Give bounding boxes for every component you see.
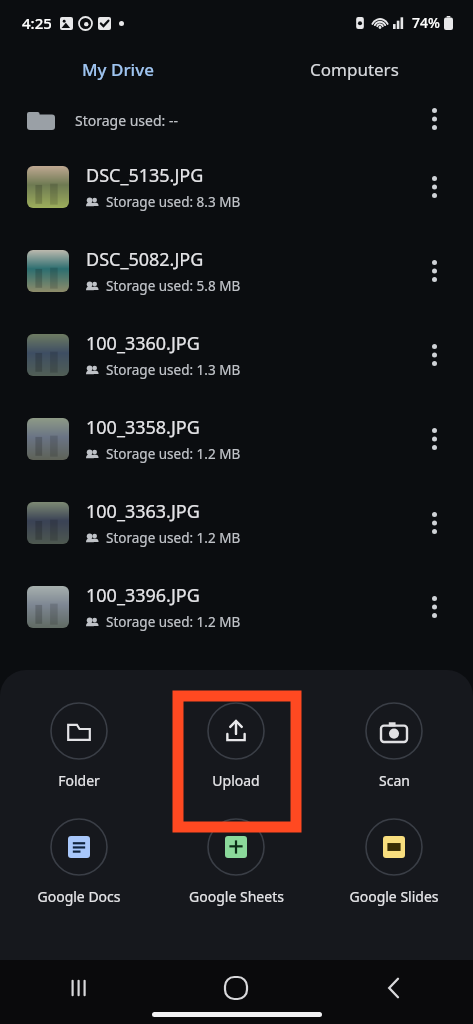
staticText: Google Sheets (189, 887, 284, 906)
button[interactable]: Google Sheets (157, 812, 315, 912)
staticText: 100_3358.JPG (86, 415, 200, 440)
button[interactable]: More options (417, 499, 451, 547)
button[interactable]: Back (315, 960, 473, 1016)
staticText: Google Slides (349, 887, 439, 906)
staticText: Storage used: 1.3 MB (106, 361, 241, 379)
button[interactable]: My Drive (0, 45, 236, 93)
staticText: Storage used: 5.8 MB (106, 277, 241, 295)
button[interactable]: Folder (0, 696, 157, 796)
button[interactable]: Home (157, 960, 315, 1016)
button[interactable]: More options (417, 331, 451, 379)
staticText: DSC_5082.JPG (86, 247, 204, 272)
button[interactable]: Computers (236, 45, 473, 93)
staticText: Storage used: 1.2 MB (106, 529, 241, 547)
button[interactable]: Google Slides (315, 812, 473, 912)
button[interactable]: Google Docs (0, 812, 157, 912)
button[interactable]: Scan (315, 696, 473, 796)
button[interactable]: Upload (157, 696, 315, 796)
button[interactable]: More options (417, 583, 451, 631)
button[interactable]: More options (417, 415, 451, 463)
staticText: 74% (412, 13, 440, 32)
button[interactable]: DSC_5082.JPG (0, 229, 473, 313)
button[interactable]: More options (417, 95, 451, 143)
staticText: Storage used: 1.2 MB (106, 445, 241, 463)
button[interactable]: More options (417, 247, 451, 295)
button[interactable]: More options (417, 163, 451, 211)
staticText: Storage used: 8.3 MB (106, 193, 241, 211)
button[interactable]: 100_3360.JPG (0, 313, 473, 397)
button[interactable]: Storage used: -- (0, 93, 473, 145)
staticText: Upload (212, 771, 260, 790)
staticText: Storage used: -- (75, 111, 178, 130)
staticText: 100_3396.JPG (86, 583, 200, 608)
button[interactable]: DSC_5135.JPG (0, 145, 473, 229)
staticText: DSC_5135.JPG (86, 163, 204, 188)
staticText: Scan (379, 771, 410, 790)
staticText: Folder (58, 771, 100, 790)
staticText: 100_3360.JPG (86, 331, 200, 356)
staticText: 4:25 (22, 13, 52, 33)
staticText: Computers (310, 58, 399, 81)
staticText: My Drive (82, 58, 154, 81)
staticText: Storage used: 1.2 MB (106, 613, 241, 631)
staticText: 100_3363.JPG (86, 499, 200, 524)
staticText: Google Docs (37, 887, 121, 906)
button[interactable]: Recent apps (0, 960, 157, 1016)
button[interactable]: 100_3363.JPG (0, 481, 473, 565)
button[interactable]: 100_3396.JPG (0, 565, 473, 649)
button[interactable]: 100_3358.JPG (0, 397, 473, 481)
